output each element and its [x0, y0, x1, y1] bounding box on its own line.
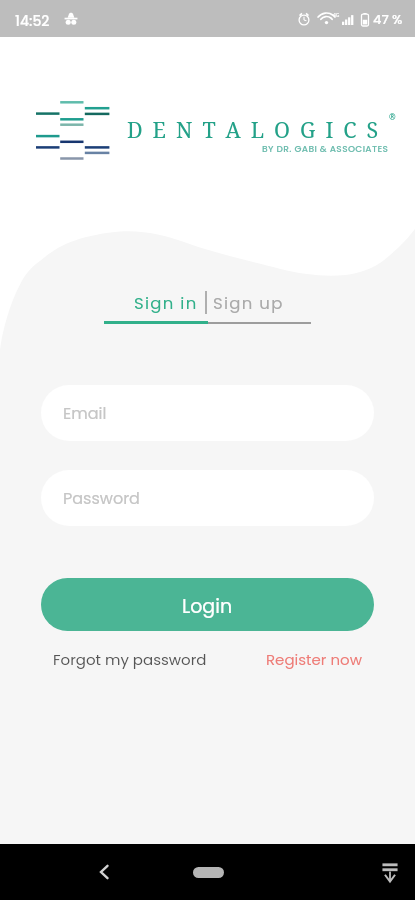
- button[interactable]: Hide keyboard: [362, 844, 415, 900]
- button[interactable]: Sign up: [208, 291, 311, 321]
- staticText: 4G: [333, 12, 340, 19]
- staticText: Forgot my password: [53, 649, 207, 670]
- button[interactable]: Register now: [266, 649, 362, 670]
- staticText: D E N T A L O G I C S: [127, 115, 381, 144]
- button[interactable]: Password: [41, 470, 374, 526]
- button[interactable]: Sign in: [104, 291, 208, 321]
- button[interactable]: Home: [180, 844, 236, 900]
- staticText: Password: [63, 487, 140, 509]
- staticText: ®: [389, 111, 396, 122]
- button[interactable]: Login: [41, 578, 374, 631]
- button[interactable]: Back: [76, 844, 132, 900]
- button[interactable]: Forgot my password: [53, 649, 207, 670]
- staticText: Email: [63, 402, 107, 424]
- button[interactable]: Email: [41, 385, 374, 441]
- staticText: 14:52: [15, 11, 50, 31]
- staticText: Login: [182, 593, 233, 620]
- staticText: Sign up: [213, 292, 284, 315]
- staticText: BY DR. GABI & ASSOCIATES: [262, 143, 389, 156]
- staticText: Sign in: [134, 292, 198, 315]
- staticText: 47 %: [373, 10, 403, 28]
- staticText: Register now: [266, 649, 362, 670]
